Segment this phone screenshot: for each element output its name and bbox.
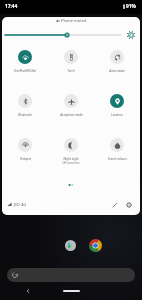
- staticText: 17:44: [5, 3, 18, 10]
- button[interactable]: Search: [7, 268, 135, 282]
- button[interactable]: Play Store: [65, 240, 76, 251]
- staticText: Night Light: [63, 157, 79, 161]
- button[interactable]: Hotspot: [2, 138, 48, 164]
- staticText: Location: [111, 113, 123, 117]
- button[interactable]: Back: [24, 287, 32, 295]
- button[interactable]: Night Light: [48, 138, 94, 164]
- button[interactable]: Settings: [123, 199, 135, 211]
- button[interactable]: Invert colours: [94, 138, 140, 164]
- button[interactable]: Location: [94, 94, 140, 120]
- staticText: Torch: [67, 69, 75, 73]
- staticText: Phone muted: [61, 18, 87, 23]
- button[interactable]: Torch: [48, 50, 94, 76]
- staticText: JIO 4G: [14, 202, 27, 208]
- button[interactable]: Auto-rotate: [94, 50, 140, 76]
- staticText: OnePlus9(5GHz): [14, 69, 36, 73]
- button[interactable]: Brightness: [2, 29, 140, 41]
- staticText: Off at sunrise: [62, 161, 80, 164]
- button[interactable]: Auto brightness: [125, 29, 137, 41]
- button[interactable]: OnePlus9(5GHz): [2, 50, 48, 76]
- staticText: 91%: [126, 3, 136, 10]
- button[interactable]: Aeroplane mode: [48, 94, 94, 120]
- staticText: Bluetooth: [18, 113, 32, 117]
- staticText: Hotspot: [20, 157, 31, 161]
- staticText: Invert colours: [108, 157, 127, 161]
- button[interactable]: Bluetooth: [2, 94, 48, 120]
- staticText: Auto-rotate: [109, 69, 125, 73]
- button[interactable]: Edit: [109, 199, 121, 211]
- staticText: Aeroplane mode: [60, 113, 83, 117]
- button[interactable]: Chrome: [89, 239, 102, 252]
